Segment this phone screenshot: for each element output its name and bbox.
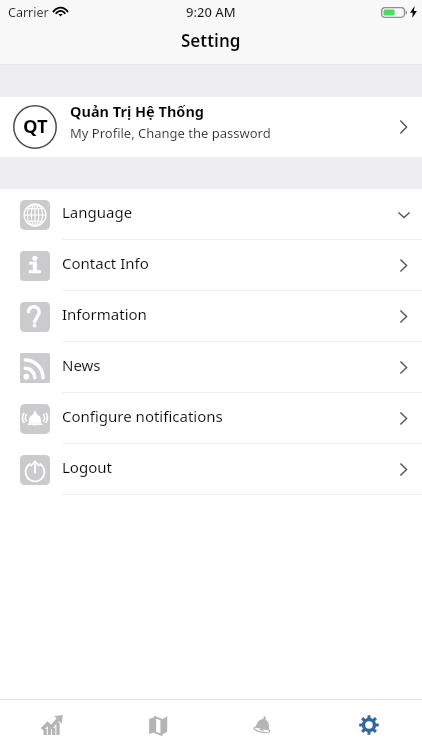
staticText: My Profile, Change the password — [70, 124, 271, 142]
button[interactable]: Configure notifications — [0, 393, 422, 444]
other: Open profile — [399, 119, 408, 135]
button[interactable]: News — [0, 342, 422, 393]
button[interactable]: Map — [105, 700, 210, 750]
staticText: Carrier — [8, 4, 49, 21]
staticText: Quản Trị Hệ Thống — [70, 101, 204, 121]
staticText: Configure notifications — [62, 406, 400, 426]
staticText: News — [62, 355, 400, 375]
button[interactable]: Logout — [0, 444, 422, 495]
button[interactable]: Settings — [316, 700, 422, 750]
staticText: QT — [23, 113, 48, 138]
staticText: Language — [62, 202, 395, 222]
button[interactable]: Language — [0, 189, 422, 240]
button[interactable]: Statistics — [0, 700, 105, 750]
staticText: Contact Info — [62, 253, 400, 273]
button[interactable]: QT — [0, 97, 422, 157]
staticText: Logout — [62, 457, 400, 477]
staticText: Information — [62, 304, 400, 324]
button[interactable]: Information — [0, 291, 422, 342]
button[interactable]: Contact Info — [0, 240, 422, 291]
staticText: 9:20 AM — [186, 3, 236, 21]
staticText: Setting — [181, 29, 241, 52]
button[interactable]: Notifications — [210, 700, 316, 750]
